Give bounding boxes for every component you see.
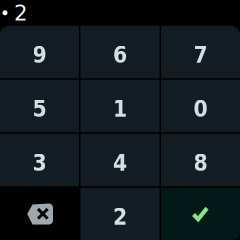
staticText: 0 xyxy=(193,96,207,122)
staticText: 2 xyxy=(14,1,28,26)
button[interactable]: 1 xyxy=(80,80,159,132)
staticText: 7 xyxy=(193,42,207,68)
staticText: 3 xyxy=(32,150,46,176)
button[interactable]: 6 xyxy=(80,26,159,78)
staticText: 5 xyxy=(32,96,46,122)
staticText: 9 xyxy=(32,42,46,68)
button[interactable]: 7 xyxy=(161,26,240,78)
staticText: 2 xyxy=(113,204,127,230)
staticText: 6 xyxy=(113,42,127,68)
button[interactable]: 3 xyxy=(0,134,79,186)
staticText: 8 xyxy=(193,150,207,176)
button[interactable]: 9 xyxy=(0,26,79,78)
button[interactable]: Delete xyxy=(0,188,79,240)
button[interactable]: 0 xyxy=(161,80,240,132)
staticText: 1 xyxy=(113,96,127,122)
button[interactable]: 2 xyxy=(80,188,159,240)
button[interactable]: 5 xyxy=(0,80,79,132)
staticText: 4 xyxy=(113,150,127,176)
button[interactable]: 8 xyxy=(161,134,240,186)
button[interactable]: 4 xyxy=(80,134,159,186)
button[interactable]: Confirm xyxy=(161,188,240,240)
